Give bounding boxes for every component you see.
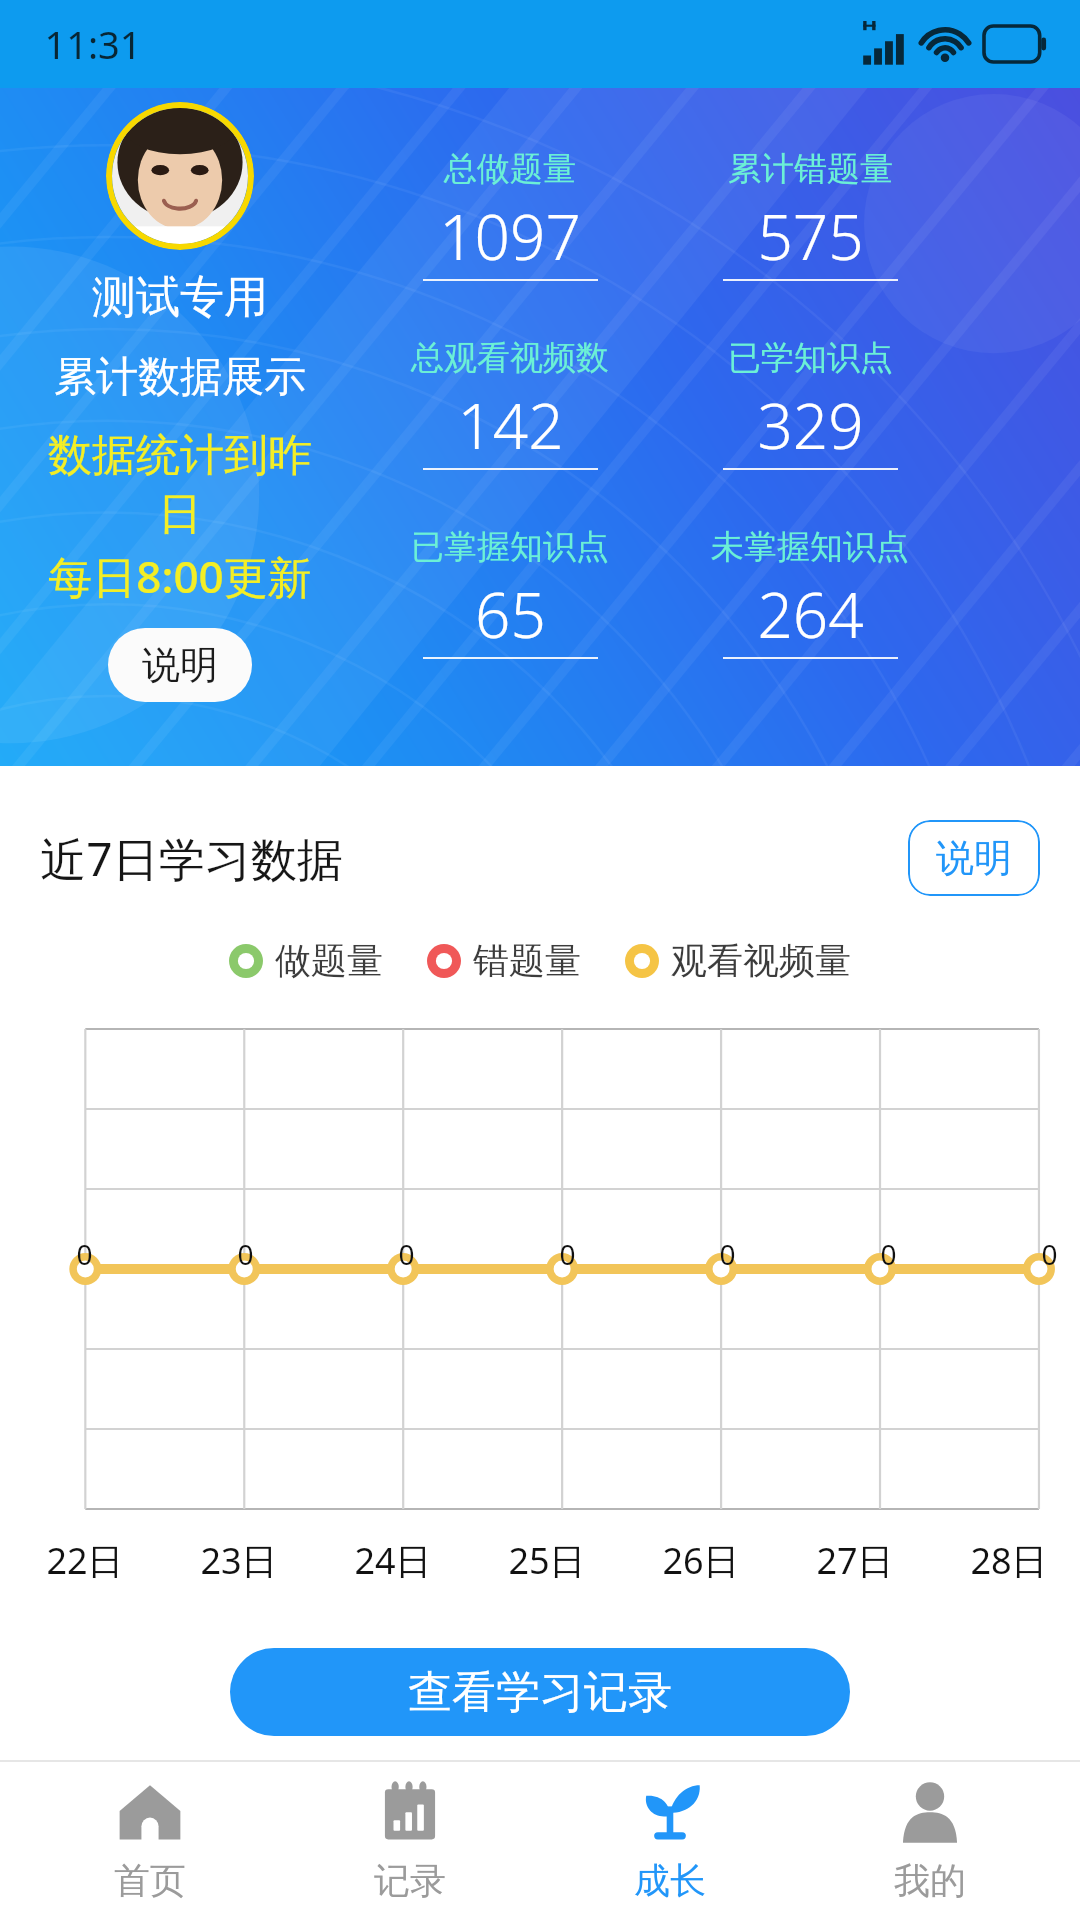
button[interactable]: 说明 [108,628,252,702]
staticText: 575 [757,194,864,278]
staticText: 23日 [200,1536,278,1585]
staticText: 已掌握知识点 [411,526,609,568]
staticText: 说明 [142,641,218,689]
staticText: 25日 [508,1536,586,1585]
staticText: 记录 [374,1858,446,1903]
staticText: 每日8:00更新 [48,546,312,606]
staticText: 测试专用 [92,270,268,325]
staticText: 329 [757,383,864,467]
staticText: 数据统计到昨日 [40,428,320,542]
staticText: 做题量 [275,938,383,983]
staticText: 22日 [46,1536,124,1585]
staticText: 未掌握知识点 [711,526,909,568]
other: 成长 [637,1780,703,1846]
staticText: 观看视频量 [671,938,851,983]
button[interactable]: 说明 [908,820,1040,896]
button[interactable]: 我的 [820,1770,1040,1913]
other: 首页 [117,1780,183,1846]
staticText: 已学知识点 [728,337,893,379]
staticText: 65 [475,572,546,656]
staticText: 0 [880,1235,897,1273]
staticText: 首页 [114,1858,186,1903]
staticText: 0.0 [35,1269,84,1270]
staticText: 0 [398,1235,415,1273]
staticText: 近7日学习数据 [40,827,343,890]
staticText: 0 [76,1235,93,1273]
staticText: 0 [719,1235,736,1273]
button[interactable]: 记录 [300,1770,520,1913]
staticText: 264 [757,572,864,656]
button[interactable]: 首页 [40,1770,260,1913]
staticText: 累计数据展示 [54,351,306,404]
button[interactable]: 查看学习记录 [230,1648,850,1736]
staticText: 28日 [970,1536,1048,1585]
staticText: 错题量 [473,938,581,983]
staticText: 成长 [634,1858,706,1903]
staticText: 查看学习记录 [408,1665,672,1720]
staticText: 总观看视频数 [411,337,609,379]
staticText: 27日 [816,1536,894,1585]
staticText: 总做题量 [444,148,576,190]
staticText: 1097 [439,194,581,278]
staticText: 说明 [936,834,1012,882]
button[interactable]: 成长 [560,1770,780,1913]
staticText: 24日 [354,1536,432,1585]
staticText: 0 [1041,1235,1058,1273]
staticText: 26日 [662,1536,740,1585]
staticText: 累计错题量 [728,148,893,190]
other: 我的 [897,1780,963,1846]
staticText: 0 [237,1235,254,1273]
other: 记录 [377,1780,443,1846]
staticText: 142 [457,383,564,467]
staticText: 11:31 [44,18,142,70]
staticText: 我的 [894,1858,966,1903]
staticText: 0 [559,1235,576,1273]
